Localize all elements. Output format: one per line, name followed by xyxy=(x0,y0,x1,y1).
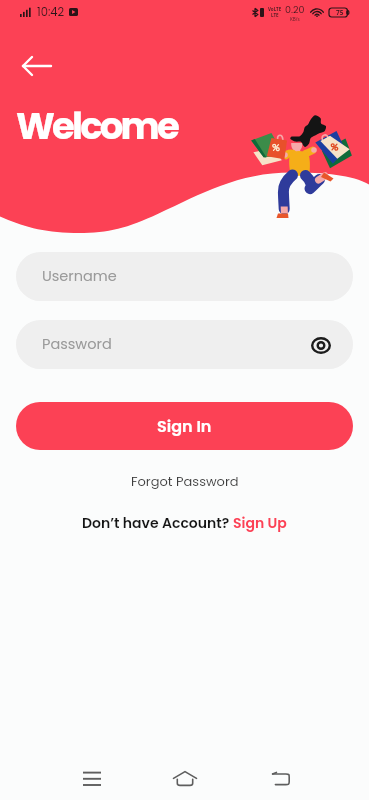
staticText: Don’t have Account? xyxy=(82,513,233,533)
button[interactable]: Back xyxy=(17,46,57,86)
button[interactable]: Don’t have Account? xyxy=(82,513,287,533)
button[interactable]: Home xyxy=(162,755,208,800)
staticText: LTE xyxy=(271,12,279,18)
staticText: 10:42 xyxy=(37,4,65,20)
button[interactable]: Back xyxy=(258,756,304,800)
staticText: KB/s xyxy=(290,16,300,22)
button[interactable]: Recent apps xyxy=(69,756,115,800)
staticText: Welcome xyxy=(16,100,177,152)
button[interactable]: Username xyxy=(16,252,353,301)
button[interactable]: Sign In xyxy=(16,402,353,450)
staticText: Password xyxy=(42,334,112,354)
staticText: Username xyxy=(42,266,117,286)
staticText: Sign Up xyxy=(233,513,287,533)
staticText: 75 xyxy=(336,8,344,17)
staticText: VoLTE xyxy=(268,6,282,12)
staticText: Sign In xyxy=(157,415,212,437)
staticText: 0.20 xyxy=(285,3,305,16)
button[interactable]: Forgot Password xyxy=(131,472,239,490)
button[interactable]: Show password xyxy=(305,329,337,361)
